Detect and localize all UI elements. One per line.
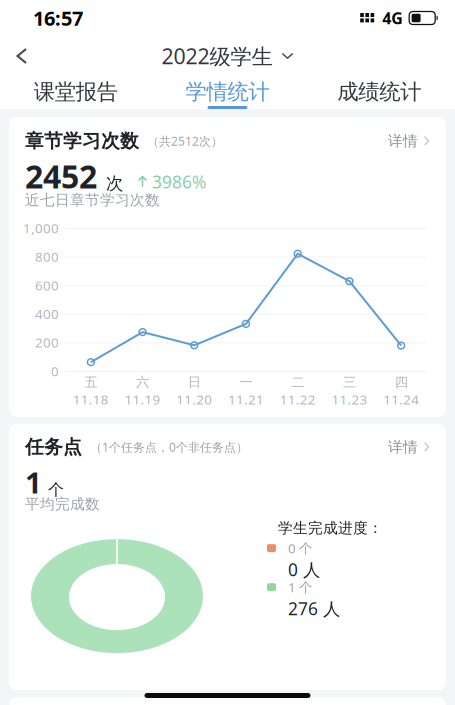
button[interactable]: 课堂报告 (0, 73, 152, 109)
staticText: 800 (35, 248, 59, 265)
staticText: 六 (136, 374, 149, 390)
button[interactable]: 详情 (388, 132, 430, 150)
staticText: 11.19 (125, 390, 161, 408)
staticText: 四 (395, 374, 408, 390)
staticText: 学生完成进度： (278, 519, 383, 537)
staticText: 2452 (25, 155, 97, 197)
staticText: 日 (188, 374, 201, 390)
staticText: 4G (382, 7, 403, 29)
staticText: （1个任务点，0个非任务点） (90, 439, 248, 455)
staticText: 三 (343, 374, 356, 390)
button[interactable]: 学情统计 (152, 73, 303, 109)
staticText: 600 (35, 276, 59, 294)
staticText: 11.21 (228, 390, 264, 408)
staticText: 任务点 (25, 436, 82, 458)
staticText: 五 (84, 374, 97, 390)
staticText: 次 (106, 173, 123, 194)
staticText: 11.18 (73, 390, 109, 408)
button[interactable]: 详情 (388, 438, 430, 456)
staticText: 11.24 (383, 390, 419, 408)
staticText: 11.23 (331, 390, 367, 408)
button[interactable]: 成绩统计 (303, 73, 455, 109)
staticText: 详情 (388, 132, 418, 150)
staticText: 3986% (152, 170, 206, 193)
staticText: 400 (35, 305, 59, 323)
staticText: 1,000 (23, 219, 59, 237)
staticText: （共2512次） (147, 133, 223, 149)
staticText: 276 人 (288, 597, 340, 620)
staticText: 详情 (388, 438, 418, 456)
staticText: 学情统计 (185, 79, 269, 105)
staticText: 0 人 (288, 558, 320, 581)
button[interactable]: Back (0, 39, 44, 73)
staticText: 近七日章节学习次数 (25, 191, 160, 209)
staticText: 1 (25, 463, 42, 502)
staticText: 章节学习次数 (25, 129, 139, 152)
staticText: 16:57 (33, 5, 83, 31)
staticText: 一 (239, 374, 252, 390)
staticText: 平均完成数 (25, 495, 100, 513)
staticText: 11.20 (176, 390, 212, 408)
staticText: 200 (35, 334, 59, 351)
staticText: 课堂报告 (34, 79, 118, 105)
staticText: 11.22 (280, 390, 316, 408)
staticText: 个 (48, 480, 64, 500)
staticText: 2022级学生 (161, 42, 272, 70)
staticText: 成绩统计 (337, 79, 421, 105)
staticText: 二 (291, 374, 304, 390)
staticText: 0 (51, 362, 59, 380)
staticText: 0 个 (288, 539, 312, 557)
staticText: 1 个 (288, 578, 312, 596)
button[interactable]: 2022级学生 (161, 39, 293, 73)
